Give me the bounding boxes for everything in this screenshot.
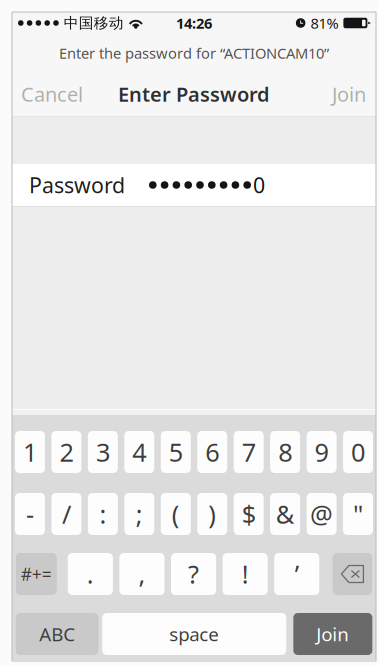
- staticText: &: [276, 497, 295, 531]
- button[interactable]: &: [270, 493, 300, 535]
- staticText: :: [99, 497, 106, 531]
- staticText: Join: [332, 81, 366, 107]
- button[interactable]: -: [15, 493, 45, 535]
- staticText: Enter Password: [118, 81, 270, 107]
- staticText: .: [87, 557, 94, 591]
- staticText: ABC: [39, 622, 75, 646]
- staticText: 4: [132, 435, 146, 469]
- staticText: 8: [278, 435, 292, 469]
- staticText: ): [208, 497, 216, 531]
- staticText: (: [172, 497, 180, 531]
- button[interactable]: ;: [124, 493, 154, 535]
- button[interactable]: Join: [293, 613, 372, 655]
- button[interactable]: 4: [124, 431, 154, 473]
- button[interactable]: 0: [343, 431, 373, 473]
- staticText: 7: [242, 435, 256, 469]
- button[interactable]: 6: [197, 431, 227, 473]
- staticText: 中国移动: [64, 14, 124, 32]
- staticText: 5: [169, 435, 183, 469]
- button[interactable]: space: [102, 613, 286, 655]
- staticText: 3: [96, 435, 110, 469]
- button[interactable]: ?: [171, 553, 216, 595]
- staticText: #+=: [21, 562, 52, 585]
- button[interactable]: 7: [234, 431, 264, 473]
- staticText: Enter the password for “ACTIONCAM10”: [59, 43, 329, 63]
- button[interactable]: ,: [119, 553, 164, 595]
- staticText: Cancel: [21, 81, 83, 107]
- button[interactable]: (: [161, 493, 191, 535]
- button[interactable]: /: [51, 493, 81, 535]
- button[interactable]: .: [68, 553, 113, 595]
- button[interactable]: @: [307, 493, 336, 535]
- staticText: ,: [138, 557, 145, 591]
- staticText: 6: [205, 435, 219, 469]
- button[interactable]: $: [234, 493, 264, 535]
- staticText: 0: [253, 171, 265, 199]
- staticText: Join: [316, 622, 349, 646]
- button[interactable]: 3: [88, 431, 118, 473]
- staticText: ?: [188, 557, 199, 591]
- staticText: $: [242, 497, 256, 531]
- staticText: ": [353, 497, 363, 531]
- button[interactable]: Delete: [333, 553, 372, 595]
- staticText: /: [62, 497, 71, 531]
- button[interactable]: ’: [274, 553, 319, 595]
- button[interactable]: !: [223, 553, 268, 595]
- staticText: 14:26: [176, 13, 212, 33]
- button[interactable]: ": [343, 493, 373, 535]
- button[interactable]: 9: [307, 431, 336, 473]
- staticText: -: [26, 497, 34, 531]
- staticText: 2: [59, 435, 73, 469]
- staticText: 9: [315, 435, 329, 469]
- staticText: space: [169, 622, 219, 646]
- button[interactable]: 5: [161, 431, 191, 473]
- staticText: Password: [29, 171, 125, 199]
- staticText: 81%: [310, 13, 338, 33]
- button[interactable]: ABC: [16, 613, 99, 655]
- button[interactable]: ): [197, 493, 227, 535]
- button[interactable]: Join: [322, 72, 376, 116]
- button[interactable]: 2: [51, 431, 81, 473]
- staticText: @: [310, 497, 333, 531]
- button[interactable]: 1: [15, 431, 45, 473]
- button[interactable]: Cancel: [12, 72, 92, 116]
- staticText: !: [242, 557, 249, 591]
- staticText: ;: [136, 497, 143, 531]
- staticText: ’: [295, 557, 299, 591]
- button[interactable]: :: [88, 493, 118, 535]
- button[interactable]: 8: [270, 431, 300, 473]
- button[interactable]: #+=: [16, 553, 57, 595]
- staticText: 0: [351, 435, 365, 469]
- staticText: 1: [23, 435, 37, 469]
